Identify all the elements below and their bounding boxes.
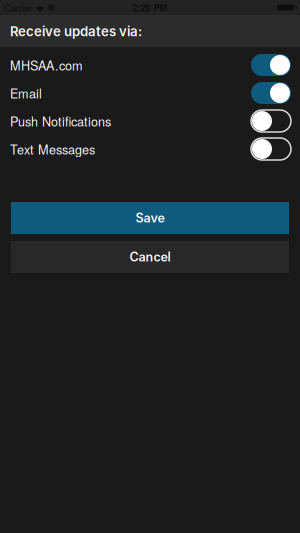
staticText: Receive updates via: (10, 23, 142, 39)
button[interactable]: Save (11, 202, 289, 234)
staticText: Push Notifications (10, 112, 111, 130)
button[interactable]: Push Notifications (251, 110, 291, 132)
staticText: Email (10, 84, 42, 102)
staticText: Save (135, 210, 164, 226)
staticText: Text Messages (10, 140, 95, 158)
button[interactable]: Email (251, 82, 291, 104)
staticText: 2:29 PM (132, 1, 167, 14)
staticText: Carrier (4, 1, 32, 14)
button[interactable]: MHSAA.com (251, 54, 291, 76)
button[interactable]: Cancel (11, 241, 289, 273)
staticText: MHSAA.com (10, 56, 83, 74)
button[interactable]: Text Messages (251, 138, 291, 160)
staticText: Cancel (129, 249, 170, 265)
